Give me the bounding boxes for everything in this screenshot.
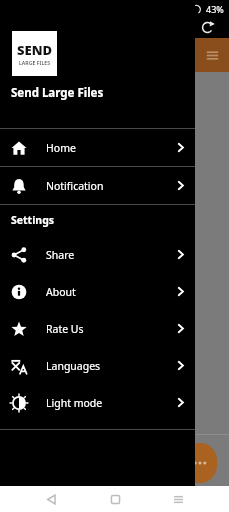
staticText: LARGE FILES: [19, 59, 51, 66]
button[interactable]: About: [0, 273, 195, 310]
button[interactable]: More options: [183, 443, 217, 483]
button[interactable]: Languages: [0, 347, 195, 384]
button[interactable]: Share: [0, 236, 195, 273]
staticText: 43%: [206, 3, 224, 15]
staticText: Settings: [11, 213, 55, 227]
staticText: Send Large Files: [11, 85, 104, 101]
button[interactable]: Light mode: [0, 384, 195, 421]
staticText: Rate Us: [46, 322, 84, 336]
button[interactable]: Open navigation menu: [195, 38, 229, 72]
button[interactable]: Back: [38, 486, 64, 512]
button[interactable]: Home: [102, 486, 128, 512]
staticText: About: [46, 285, 76, 299]
staticText: Languages: [46, 359, 101, 373]
button[interactable]: Notification: [0, 167, 195, 204]
staticText: Notification: [46, 179, 104, 193]
staticText: Home: [46, 141, 76, 155]
staticText: Light mode: [46, 396, 103, 410]
button[interactable]: Rate Us: [0, 310, 195, 347]
button[interactable]: Recent apps: [165, 486, 191, 512]
staticText: Share: [46, 248, 75, 262]
button[interactable]: Home: [0, 129, 195, 166]
staticText: SEND: [17, 41, 53, 59]
